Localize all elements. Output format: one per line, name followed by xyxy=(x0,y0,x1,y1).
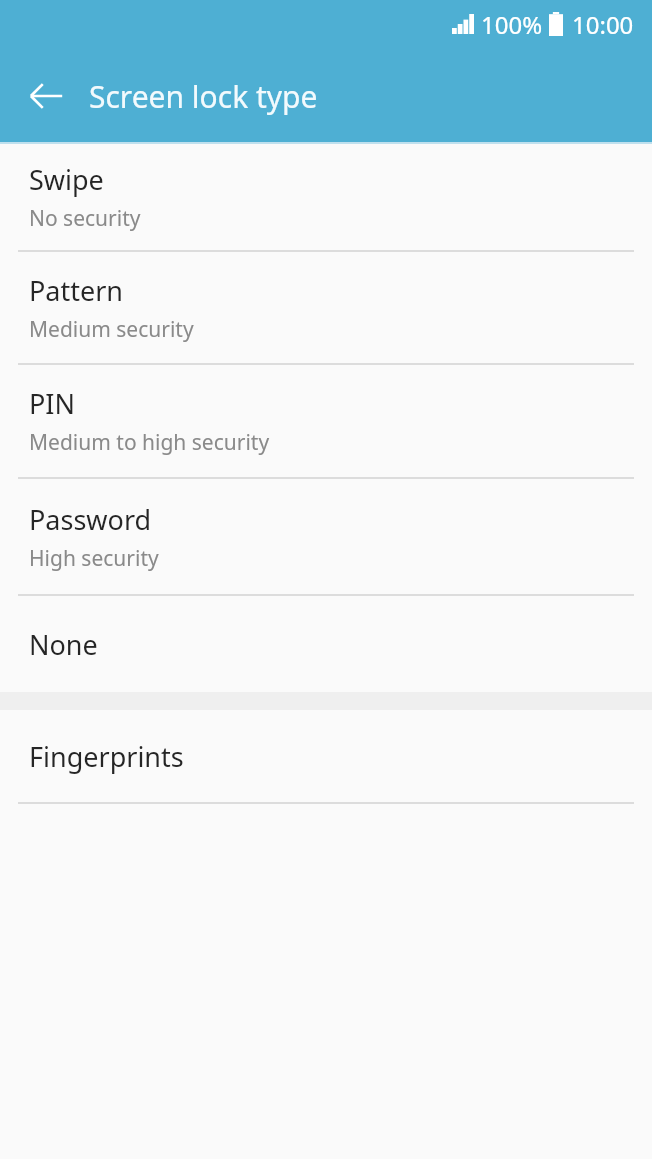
staticText: PIN xyxy=(29,385,76,422)
button[interactable]: Swipe xyxy=(0,144,652,250)
button[interactable]: Password xyxy=(0,479,652,594)
staticText: Fingerprints xyxy=(29,738,184,775)
staticText: Screen lock type xyxy=(89,76,318,117)
button[interactable]: Pattern xyxy=(0,252,652,363)
button[interactable]: Back xyxy=(18,68,74,124)
staticText: High security xyxy=(29,544,159,573)
staticText: 10:00 xyxy=(572,8,634,41)
staticText: Swipe xyxy=(29,161,104,198)
button[interactable]: PIN xyxy=(0,365,652,477)
button[interactable]: None xyxy=(0,596,652,692)
staticText: None xyxy=(29,626,98,663)
staticText: Pattern xyxy=(29,272,124,309)
staticText: 100% xyxy=(481,8,543,41)
staticText: Medium to high security xyxy=(29,428,270,457)
staticText: Medium security xyxy=(29,315,194,344)
staticText: No security xyxy=(29,204,141,233)
staticText: Password xyxy=(29,501,152,538)
button[interactable]: Fingerprints xyxy=(0,710,652,802)
